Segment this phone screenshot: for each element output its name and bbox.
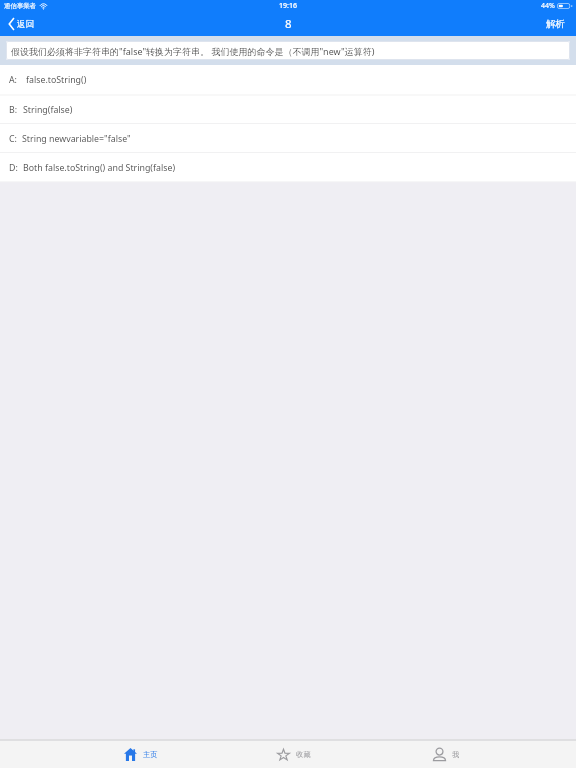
staticText: 返回	[17, 19, 34, 30]
staticText: String newvariable="false"	[22, 133, 131, 145]
button[interactable]: 解析	[535, 14, 576, 34]
staticText: 假设我们必须将非字符串的"false"转换为字符串。 我们使用的命令是（不调用"…	[11, 45, 375, 57]
staticText: 主页	[143, 750, 158, 759]
staticText: B:	[9, 104, 18, 116]
button[interactable]: 主页	[113, 745, 163, 764]
staticText: 8	[285, 16, 292, 32]
staticText: 解析	[546, 18, 565, 30]
staticText: C:	[9, 133, 17, 145]
staticText: 44%	[541, 1, 555, 11]
staticText: String(false)	[23, 104, 73, 116]
staticText: 通信事業者	[4, 2, 36, 10]
button[interactable]: 收藏	[277, 745, 319, 764]
button[interactable]: 我	[432, 745, 463, 764]
staticText: false.toString()	[26, 74, 87, 86]
staticText: A:	[9, 74, 17, 86]
staticText: 19:16	[279, 1, 297, 11]
button[interactable]: C:	[0, 124, 576, 153]
button[interactable]: 返回	[0, 14, 42, 34]
button[interactable]: D:	[0, 153, 576, 182]
button[interactable]: B:	[0, 95, 576, 124]
button[interactable]: A:	[0, 65, 576, 95]
staticText: Both false.toString() and String(false)	[23, 162, 176, 174]
staticText: D:	[9, 162, 18, 174]
staticText: 我	[452, 750, 460, 759]
staticText: 收藏	[296, 750, 311, 759]
